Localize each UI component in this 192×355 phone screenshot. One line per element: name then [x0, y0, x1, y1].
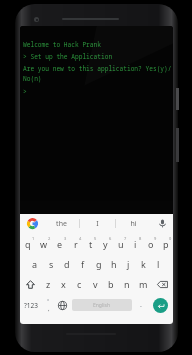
staticText: 8	[139, 236, 142, 241]
staticText: c	[77, 278, 82, 290]
button[interactable]: m	[135, 274, 151, 294]
button[interactable]: r	[68, 234, 83, 254]
staticText: Welcome to Hack Prank	[23, 40, 101, 48]
button[interactable]: Google	[20, 214, 44, 233]
button[interactable]: Backspace	[151, 274, 173, 294]
button[interactable]: q	[20, 234, 36, 254]
staticText: y	[103, 238, 108, 250]
button[interactable]: ?123	[20, 294, 41, 316]
staticText: 5	[94, 236, 97, 241]
button[interactable]: d	[59, 254, 75, 274]
button[interactable]: Voice input	[151, 214, 173, 233]
staticText: 3	[64, 236, 67, 241]
staticText: ,	[48, 305, 50, 313]
staticText: m	[139, 278, 148, 290]
staticText: 7	[124, 236, 127, 241]
staticText: k	[141, 258, 146, 270]
staticText: a	[32, 258, 38, 270]
staticText: Are you new to this application? Yes(y)/…	[23, 64, 173, 83]
button[interactable]: the	[44, 214, 79, 233]
button[interactable]: I	[80, 214, 115, 233]
staticText: n	[124, 278, 130, 290]
button[interactable]: x	[56, 274, 71, 294]
button[interactable]: h	[106, 254, 121, 274]
button[interactable]: b	[103, 274, 119, 294]
staticText: ?123	[24, 301, 38, 310]
button[interactable]: p	[158, 234, 173, 254]
button[interactable]: Shift	[20, 274, 41, 294]
button[interactable]: a	[27, 254, 43, 274]
button[interactable]: l	[151, 254, 166, 274]
button[interactable]: Change language	[55, 294, 70, 316]
button[interactable]: y	[98, 234, 113, 254]
staticText: 0	[169, 236, 172, 241]
staticText: 2	[48, 236, 51, 241]
staticText: d	[64, 258, 70, 270]
staticText: j	[127, 258, 130, 270]
button[interactable]: k	[136, 254, 151, 274]
button[interactable]: g	[91, 254, 106, 274]
staticText: the	[56, 219, 67, 229]
button[interactable]: s	[43, 254, 59, 274]
button[interactable]: o	[143, 234, 158, 254]
button[interactable]: °	[41, 294, 55, 316]
staticText: e	[57, 238, 63, 250]
staticText: s	[49, 258, 54, 270]
button[interactable]: n	[119, 274, 135, 294]
staticText: English	[93, 302, 111, 309]
staticText: v	[93, 278, 98, 290]
staticText: z	[46, 278, 51, 290]
button[interactable]: w	[36, 234, 52, 254]
button[interactable]: t	[83, 234, 98, 254]
button[interactable]: u	[113, 234, 128, 254]
staticText: w	[40, 238, 48, 250]
staticText: .	[140, 300, 142, 310]
button[interactable]: e	[52, 234, 68, 254]
staticText: g	[96, 258, 102, 270]
staticText: I	[96, 219, 99, 229]
staticText: h	[111, 258, 117, 270]
staticText: p	[163, 238, 169, 250]
staticText: x	[61, 278, 66, 290]
staticText: 9	[154, 236, 157, 241]
staticText: l	[157, 258, 160, 270]
staticText: b	[108, 278, 114, 290]
button[interactable]: i	[128, 234, 143, 254]
staticText: 6	[109, 236, 112, 241]
staticText: °	[47, 298, 50, 305]
staticText: f	[81, 258, 85, 270]
staticText: r	[74, 238, 78, 250]
staticText: 4	[79, 236, 82, 241]
button[interactable]: z	[41, 274, 56, 294]
staticText: t	[89, 238, 93, 250]
staticText: i	[134, 238, 137, 250]
button[interactable]: Enter	[148, 294, 173, 316]
button[interactable]: English	[72, 299, 132, 311]
button[interactable]: f	[75, 254, 91, 274]
button[interactable]: v	[87, 274, 103, 294]
staticText: q	[25, 238, 31, 250]
button[interactable]: hi	[116, 214, 151, 233]
staticText: >	[23, 87, 27, 95]
button[interactable]: c	[71, 274, 87, 294]
button[interactable]: .	[134, 294, 148, 316]
staticText: o	[148, 238, 154, 250]
button[interactable]: j	[121, 254, 136, 274]
staticText: u	[118, 238, 124, 250]
staticText: > Set up the Application	[23, 52, 113, 60]
staticText: 1	[32, 236, 35, 241]
staticText: hi	[130, 219, 137, 229]
